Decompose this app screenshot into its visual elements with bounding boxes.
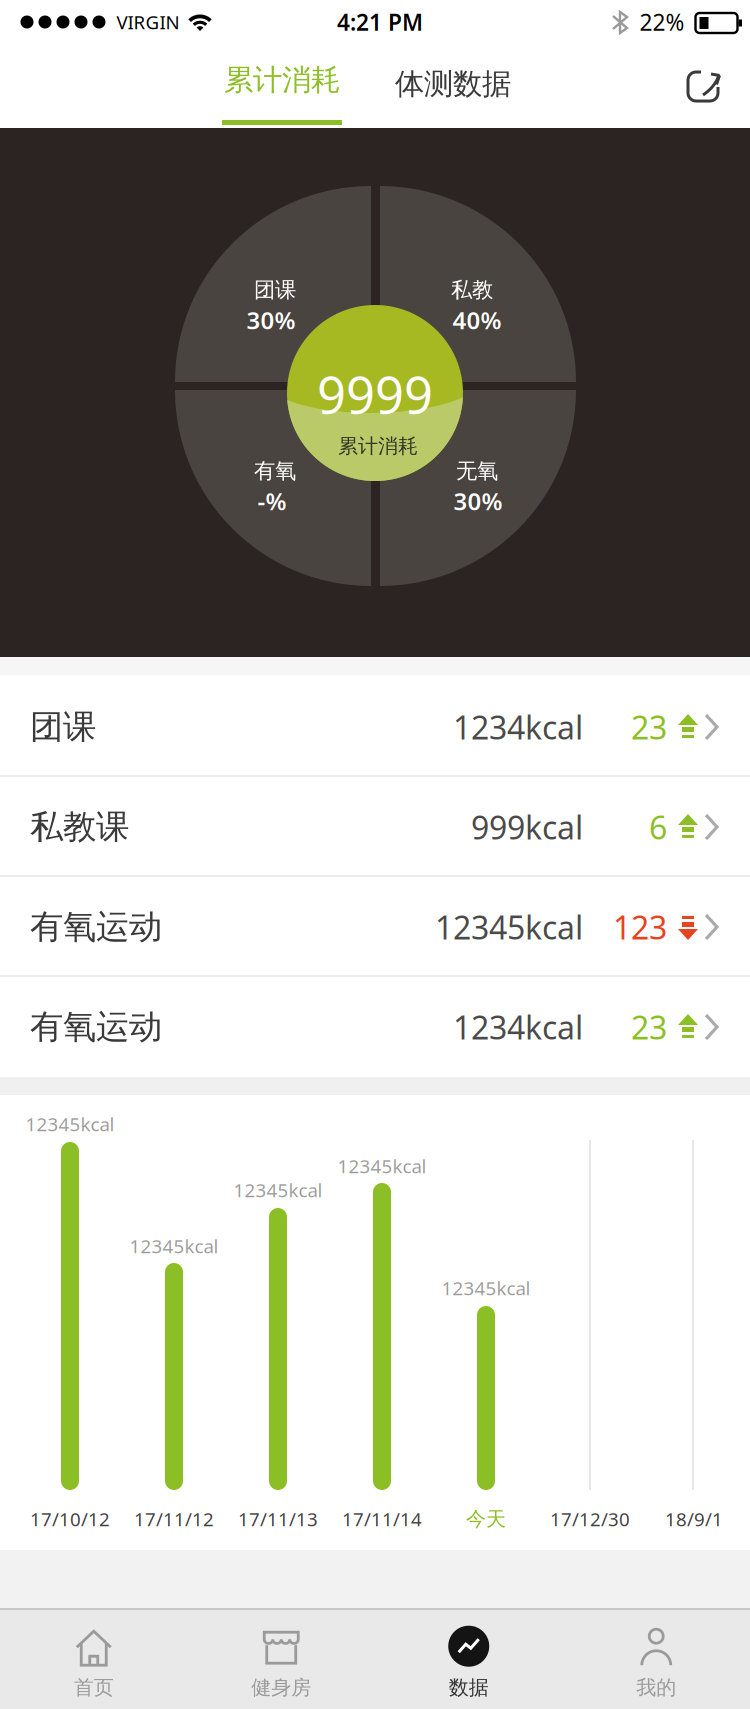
- staticText: 首页: [74, 1675, 114, 1700]
- button[interactable]: 有氧运动: [0, 977, 750, 1077]
- staticText: 有氧运动: [30, 906, 162, 947]
- button[interactable]: 有氧运动: [0, 877, 750, 977]
- staticText: 今天: [466, 1507, 506, 1531]
- staticText: VIRGIN: [116, 10, 179, 34]
- staticText: 40%: [452, 304, 501, 336]
- button[interactable]: 累计消耗: [202, 40, 362, 128]
- staticText: 1234kcal: [453, 706, 583, 748]
- staticText: 17/11/13: [238, 1507, 318, 1531]
- staticText: 私教: [451, 277, 493, 303]
- button[interactable]: 数据: [375, 1610, 562, 1709]
- staticText: 17/11/12: [134, 1507, 214, 1531]
- staticText: 30%: [246, 304, 295, 336]
- staticText: 30%: [453, 485, 502, 517]
- staticText: 12345kcal: [441, 1276, 530, 1300]
- staticText: 999kcal: [471, 806, 583, 848]
- staticText: 数据: [449, 1675, 489, 1700]
- staticText: -%: [257, 485, 286, 517]
- staticText: 123: [613, 906, 667, 948]
- staticText: 17/12/30: [550, 1507, 630, 1531]
- staticText: 12345kcal: [233, 1178, 322, 1202]
- staticText: 23: [631, 1006, 667, 1048]
- staticText: 我的: [636, 1675, 676, 1700]
- button[interactable]: 团课: [0, 677, 750, 777]
- staticText: 12345kcal: [435, 906, 583, 948]
- staticText: 12345kcal: [337, 1154, 426, 1178]
- staticText: 无氧: [456, 458, 498, 484]
- staticText: 17/11/14: [342, 1507, 422, 1531]
- button[interactable]: 体测数据: [363, 40, 543, 128]
- button[interactable]: 私教课: [0, 777, 750, 877]
- staticText: 1234kcal: [453, 1006, 583, 1048]
- staticText: 18/9/1: [665, 1507, 723, 1531]
- staticText: 有氧: [254, 458, 296, 484]
- staticText: 22%: [639, 7, 684, 37]
- button[interactable]: 健身房: [188, 1610, 375, 1709]
- staticText: 健身房: [251, 1675, 311, 1700]
- staticText: 团课: [254, 277, 296, 303]
- staticText: 体测数据: [395, 66, 511, 102]
- button[interactable]: 首页: [0, 1610, 187, 1709]
- staticText: 累计消耗: [338, 434, 418, 458]
- button[interactable]: Share: [684, 65, 728, 109]
- staticText: 12345kcal: [129, 1234, 218, 1258]
- staticText: 17/10/12: [30, 1507, 110, 1531]
- staticText: 12345kcal: [25, 1112, 114, 1136]
- button[interactable]: 我的: [563, 1610, 750, 1709]
- staticText: 4:21 PM: [337, 7, 423, 37]
- staticText: 9999: [317, 360, 433, 428]
- staticText: 累计消耗: [224, 62, 340, 98]
- staticText: 23: [631, 706, 667, 748]
- staticText: 团课: [30, 706, 96, 747]
- staticText: 有氧运动: [30, 1006, 162, 1047]
- staticText: 私教课: [30, 806, 129, 847]
- staticText: 6: [649, 806, 667, 848]
